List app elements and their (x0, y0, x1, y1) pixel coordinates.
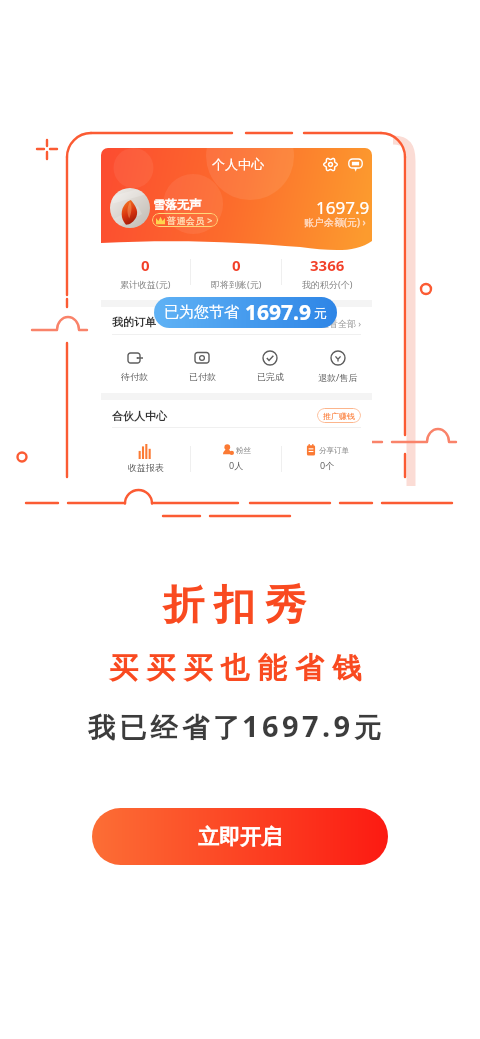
button[interactable]: 已完成 (236, 350, 304, 382)
button[interactable]: 0 (191, 255, 281, 290)
staticText: 我的订单 (112, 315, 156, 329)
staticText: 待付款 (121, 371, 148, 382)
staticText: 已付款 (189, 371, 216, 382)
staticText: 0 (232, 255, 241, 275)
staticText: 0 (141, 255, 150, 275)
button[interactable]: 退款/售后 (304, 350, 372, 383)
button[interactable]: 立即开启 (92, 808, 388, 865)
staticText: 我已经省了 (86, 711, 242, 745)
staticText: 查看全部 › (320, 317, 362, 329)
staticText: 1697.9 (316, 196, 370, 219)
button[interactable]: 我的订单 (101, 310, 372, 334)
staticText: 推广赚钱 (323, 411, 355, 421)
button[interactable]: Settings (323, 157, 338, 172)
staticText: 1697.9 (245, 298, 311, 327)
staticText: 雪落无声 (153, 197, 201, 212)
button[interactable]: 分享订单 (282, 444, 372, 471)
button[interactable]: 已为您节省 (154, 297, 337, 328)
button[interactable]: 待付款 (101, 350, 168, 382)
staticText: 元 (354, 711, 381, 745)
staticText: 收益报表 (128, 462, 164, 473)
button[interactable]: 0 (101, 255, 190, 290)
staticText: 分享订单 (319, 446, 349, 455)
staticText: 账户余额(元) › (304, 215, 366, 229)
button[interactable]: 推广赚钱 (317, 408, 361, 423)
staticText: 粉丝 (236, 446, 251, 455)
staticText: 买买买也能省钱 (109, 650, 370, 687)
staticText: 1697.9 (242, 706, 354, 745)
button[interactable]: 粉丝 (191, 444, 281, 471)
staticText: 已为您节省 (164, 303, 239, 322)
button[interactable]: Messages (348, 157, 363, 172)
staticText: 合伙人中心 (112, 409, 167, 423)
staticText: 0个 (320, 459, 335, 471)
button[interactable]: 3366 (282, 255, 372, 290)
staticText: 个人中心 (212, 156, 264, 172)
staticText: 立即开启 (198, 824, 282, 850)
staticText: 0人 (229, 459, 244, 471)
button[interactable]: 已付款 (168, 350, 236, 382)
staticText: 即将到账(元) (211, 278, 262, 290)
staticText: 累计收益(元) (120, 278, 171, 290)
staticText: 元 (314, 305, 327, 321)
staticText: 折扣秀 (158, 580, 311, 632)
staticText: 3366 (310, 255, 345, 275)
button[interactable]: 普通会员 > (156, 214, 213, 226)
staticText: 我的积分(个) (302, 278, 353, 290)
staticText: 已完成 (257, 371, 284, 382)
button[interactable]: 收益报表 (101, 444, 190, 473)
staticText: 普通会员 > (167, 214, 213, 226)
staticText: 退款/售后 (318, 371, 358, 383)
